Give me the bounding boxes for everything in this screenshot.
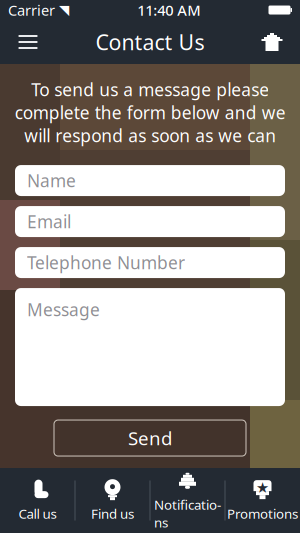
staticText: Send	[128, 426, 172, 450]
staticText: To send us a message please complete the…	[14, 78, 285, 147]
staticText: Name	[27, 169, 76, 192]
staticText: 11:40 AM	[137, 0, 200, 20]
staticText: Carrier	[8, 0, 55, 20]
staticText: ★	[256, 479, 269, 496]
staticText: Notifications	[154, 496, 221, 531]
button[interactable]: ★	[225, 468, 299, 533]
staticText: Find us	[91, 505, 134, 522]
button[interactable]: Call us	[0, 468, 74, 533]
staticText: Email	[27, 210, 71, 233]
button[interactable]: Home	[250, 20, 294, 64]
staticText: ◥	[55, 2, 69, 17]
button[interactable]: Notifications	[150, 468, 224, 533]
staticText: Promotions	[227, 505, 298, 522]
staticText: Telephone Number	[27, 251, 185, 274]
staticText: Call us	[18, 505, 56, 522]
button[interactable]: Find us	[75, 468, 149, 533]
staticText: Message	[27, 298, 100, 321]
button[interactable]: Menu	[6, 20, 50, 64]
button[interactable]: Send	[54, 420, 246, 456]
staticText: Contact Us	[95, 28, 204, 56]
